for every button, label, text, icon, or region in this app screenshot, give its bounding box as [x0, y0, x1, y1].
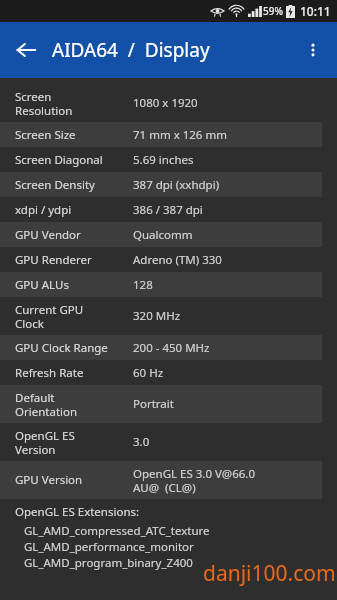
staticText: 5.69 inches	[133, 152, 194, 168]
button[interactable]: GPU Vendor	[0, 222, 337, 247]
staticText: GPU Clock Range	[15, 340, 108, 356]
staticText: Default Orientation	[15, 390, 78, 419]
staticText: Screen Diagonal	[15, 152, 103, 168]
button[interactable]: Screen Size	[0, 122, 337, 147]
staticText: 1080 x 1920	[133, 95, 198, 111]
staticText: GPU ALUs	[15, 277, 69, 293]
staticText: 200 - 450 MHz	[133, 340, 210, 356]
button[interactable]: GPU Clock Range	[0, 335, 337, 360]
staticText: Screen Size	[15, 127, 76, 143]
button[interactable]: GPU Renderer	[0, 247, 337, 272]
staticText: 386 / 387 dpi	[133, 202, 203, 218]
staticText: OpenGL ES Extensions:	[15, 504, 140, 520]
staticText: Refresh Rate	[15, 365, 84, 381]
button[interactable]: Current GPU Clock	[0, 297, 337, 335]
button[interactable]: OpenGL ES Version	[0, 423, 337, 461]
button[interactable]: Screen Density	[0, 172, 337, 197]
staticText: Screen Resolution	[15, 89, 73, 118]
staticText: OpenGL ES 3.0 V@66.0 AU@ (CL@)	[133, 466, 256, 495]
staticText: GL_AMD_performance_monitor	[24, 539, 194, 555]
staticText: 60 Hz	[133, 365, 164, 381]
staticText: GL_AMD_program_binary_Z400	[24, 555, 193, 571]
staticText: 387 dpi (xxhdpi)	[133, 177, 220, 193]
staticText: Current GPU Clock	[15, 302, 84, 331]
button[interactable]: Default Orientation	[0, 385, 337, 423]
staticText: GPU Vendor	[15, 227, 81, 243]
button[interactable]: xdpi / ydpi	[0, 197, 337, 222]
staticText: 320 MHz	[133, 308, 181, 324]
button[interactable]: OpenGL ES Extensions:	[0, 499, 337, 571]
staticText: Adreno (TM) 330	[133, 252, 222, 268]
staticText: 71 mm x 126 mm	[133, 127, 227, 143]
button[interactable]: Screen Resolution	[0, 84, 337, 122]
staticText: GPU Version	[15, 472, 83, 488]
staticText: 128	[133, 277, 153, 293]
staticText: 59%	[263, 4, 283, 18]
staticText: 10:11	[300, 3, 331, 19]
button[interactable]: GPU Version	[0, 461, 337, 499]
staticText: xdpi / ydpi	[15, 202, 72, 218]
staticText: AIDA64 / Display	[52, 37, 210, 63]
staticText: GL_AMD_compressed_ATC_texture	[24, 523, 210, 539]
staticText: 3.0	[133, 434, 150, 450]
staticText: Portrait	[133, 396, 174, 412]
staticText: OpenGL ES Version	[15, 428, 75, 457]
button[interactable]: GPU ALUs	[0, 272, 337, 297]
staticText: Screen Density	[15, 177, 95, 193]
staticText: GPU Renderer	[15, 252, 92, 268]
button[interactable]: Refresh Rate	[0, 360, 337, 385]
button[interactable]: Navigate up	[6, 30, 46, 70]
staticText: danji100.com	[203, 559, 336, 588]
staticText: Qualcomm	[133, 227, 193, 243]
button[interactable]: Screen Diagonal	[0, 147, 337, 172]
button[interactable]: More options	[293, 30, 333, 70]
